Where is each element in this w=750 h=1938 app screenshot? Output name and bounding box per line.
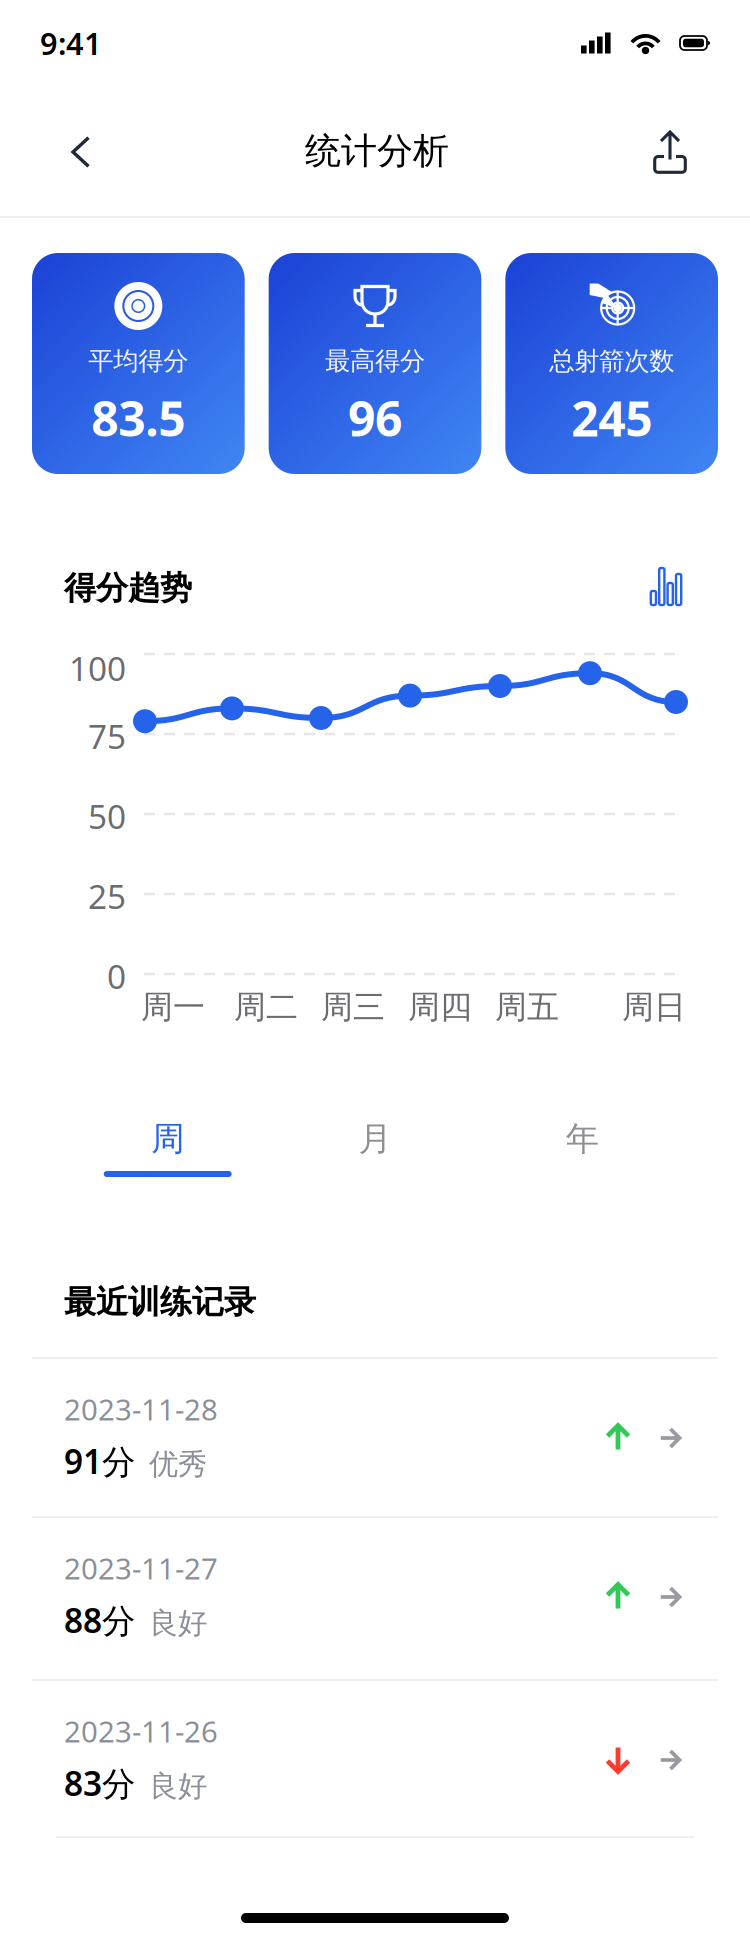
button[interactable]: 2023-11-28 bbox=[32, 1359, 718, 1516]
staticText: 年 bbox=[566, 1118, 599, 1159]
staticText: 0 bbox=[107, 954, 126, 998]
staticText: 75 bbox=[88, 714, 126, 758]
button[interactable]: 总射箭次数 bbox=[505, 253, 718, 474]
button[interactable]: 月 bbox=[271, 1071, 479, 1203]
staticText: 周 bbox=[151, 1118, 184, 1159]
staticText: 周四 bbox=[408, 987, 472, 1027]
staticText: 50 bbox=[88, 794, 126, 838]
staticText: 最高得分 bbox=[325, 345, 425, 376]
button[interactable]: 2023-11-27 bbox=[32, 1518, 718, 1675]
staticText: 得分趋势 bbox=[64, 568, 192, 608]
button[interactable]: 平均得分 bbox=[32, 253, 245, 474]
staticText: 平均得分 bbox=[88, 345, 188, 376]
staticText: 良好 bbox=[149, 1768, 207, 1804]
staticText: 最近训练记录 bbox=[64, 1282, 256, 1322]
button[interactable]: 周 bbox=[64, 1071, 271, 1203]
staticText: 周日 bbox=[622, 987, 686, 1027]
staticText: 周二 bbox=[234, 987, 298, 1027]
staticText: 83.5 bbox=[91, 386, 185, 450]
staticText: 2023-11-28 bbox=[64, 1389, 218, 1428]
staticText: 良好 bbox=[149, 1605, 207, 1641]
button[interactable]: Back bbox=[18, 106, 124, 198]
staticText: 总射箭次数 bbox=[549, 345, 674, 376]
staticText: 周三 bbox=[321, 987, 385, 1027]
staticText: 2023-11-27 bbox=[64, 1548, 218, 1587]
staticText: 月 bbox=[358, 1118, 391, 1159]
button[interactable]: 年 bbox=[479, 1071, 686, 1203]
button[interactable]: 2023-11-26 bbox=[32, 1681, 718, 1838]
staticText: 100 bbox=[69, 646, 126, 690]
staticText: 周五 bbox=[495, 987, 559, 1027]
staticText: 88分 bbox=[64, 1598, 135, 1642]
button[interactable]: Share bbox=[625, 104, 732, 200]
staticText: 统计分析 bbox=[305, 129, 449, 173]
staticText: 2023-11-26 bbox=[64, 1711, 218, 1750]
staticText: 9:41 bbox=[40, 23, 102, 63]
staticText: 周一 bbox=[141, 987, 205, 1027]
button[interactable]: 最高得分 bbox=[269, 253, 481, 474]
staticText: 25 bbox=[88, 874, 126, 918]
staticText: 83分 bbox=[64, 1761, 135, 1805]
staticText: 96 bbox=[348, 386, 402, 450]
staticText: 245 bbox=[571, 386, 652, 450]
staticText: 优秀 bbox=[149, 1446, 207, 1482]
staticText: 91分 bbox=[64, 1439, 135, 1483]
